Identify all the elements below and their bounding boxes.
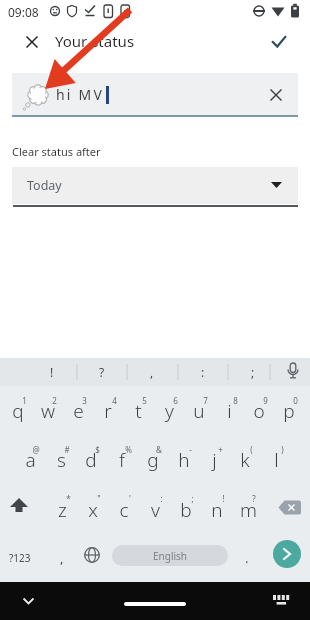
staticText: k — [240, 447, 250, 473]
staticText: t — [135, 398, 142, 424]
staticText: p — [283, 398, 295, 424]
staticText: 2 — [52, 395, 57, 406]
staticText: & — [156, 444, 162, 455]
staticText: + — [218, 444, 223, 455]
staticText: , — [150, 364, 154, 380]
button[interactable]: ; — [232, 358, 274, 386]
button[interactable]: , — [47, 533, 77, 583]
button[interactable] — [272, 358, 310, 386]
staticText: English — [153, 549, 188, 563]
staticText: z — [58, 497, 67, 523]
staticText: . — [245, 549, 249, 567]
staticText: i — [227, 398, 232, 424]
button[interactable] — [153, 386, 184, 435]
button[interactable] — [93, 386, 124, 435]
staticText: l — [274, 447, 279, 473]
staticText: 9 — [263, 395, 268, 406]
staticText: : — [160, 493, 163, 504]
button[interactable] — [273, 540, 301, 568]
button[interactable] — [2, 484, 42, 533]
staticText: ? — [99, 364, 105, 380]
staticText: 09:08 — [8, 4, 39, 20]
button[interactable]: , — [131, 358, 173, 386]
button[interactable] — [45, 435, 76, 484]
button[interactable] — [62, 386, 93, 435]
button[interactable] — [268, 484, 310, 533]
button[interactable] — [78, 484, 109, 533]
button[interactable] — [213, 386, 244, 435]
button[interactable] — [199, 435, 230, 484]
button[interactable] — [14, 587, 42, 615]
staticText: ; — [251, 364, 255, 380]
staticText: e — [73, 398, 84, 424]
button[interactable] — [32, 386, 63, 435]
staticText: ! — [50, 364, 54, 380]
staticText: b — [180, 497, 192, 523]
staticText: % — [125, 444, 132, 455]
button[interactable]: Today — [12, 167, 298, 204]
button[interactable] — [261, 80, 291, 110]
button[interactable]: ?123 — [0, 533, 40, 583]
button[interactable] — [17, 27, 47, 57]
button[interactable]: ! — [31, 358, 73, 386]
button[interactable] — [264, 26, 294, 56]
staticText: * — [66, 493, 71, 504]
staticText: h — [178, 447, 190, 473]
button[interactable] — [267, 586, 295, 614]
staticText: Clear status after — [12, 144, 101, 159]
staticText: n — [211, 497, 223, 523]
staticText: 5 — [142, 395, 147, 406]
button[interactable] — [77, 533, 107, 583]
staticText: 4 — [112, 395, 117, 406]
button[interactable]: ? — [81, 358, 123, 386]
button[interactable] — [244, 386, 275, 435]
staticText: m — [240, 497, 257, 523]
staticText: q — [12, 398, 24, 424]
button[interactable] — [15, 435, 46, 484]
staticText: , — [60, 549, 64, 567]
button[interactable] — [123, 386, 154, 435]
button[interactable] — [183, 386, 214, 435]
staticText: ; — [191, 493, 194, 504]
staticText: 0 — [293, 395, 298, 406]
button[interactable] — [107, 435, 138, 484]
button[interactable] — [229, 435, 260, 484]
button[interactable] — [171, 484, 202, 533]
staticText: v — [151, 497, 160, 523]
staticText: " — [97, 493, 101, 504]
button[interactable] — [109, 484, 140, 533]
button[interactable] — [168, 435, 199, 484]
button[interactable]: English — [112, 545, 228, 566]
staticText: 7 — [203, 395, 208, 406]
staticText: g — [147, 447, 159, 473]
button[interactable] — [47, 484, 78, 533]
staticText: - — [189, 444, 192, 455]
staticText: o — [253, 398, 265, 424]
staticText: $ — [95, 444, 100, 455]
staticText: y — [165, 398, 174, 424]
button[interactable] — [76, 435, 107, 484]
staticText: r — [104, 398, 112, 424]
staticText: ( — [250, 444, 253, 455]
staticText: : — [201, 364, 205, 380]
staticText: ) — [281, 444, 284, 455]
staticText: w — [41, 398, 55, 424]
button[interactable]: . — [232, 533, 262, 583]
staticText: 8 — [233, 395, 238, 406]
staticText: d — [85, 447, 97, 473]
button[interactable] — [140, 484, 171, 533]
staticText: c — [119, 497, 129, 523]
staticText: u — [193, 398, 205, 424]
staticText: # — [64, 444, 70, 455]
button[interactable]: hi MV — [12, 73, 298, 117]
button[interactable] — [260, 435, 291, 484]
button[interactable]: : — [182, 358, 224, 386]
button[interactable] — [233, 484, 264, 533]
staticText: 6 — [173, 395, 178, 406]
button[interactable] — [137, 435, 168, 484]
button[interactable] — [124, 602, 186, 606]
button[interactable] — [274, 386, 305, 435]
staticText: @ — [32, 444, 40, 455]
button[interactable] — [2, 386, 33, 435]
button[interactable] — [202, 484, 233, 533]
